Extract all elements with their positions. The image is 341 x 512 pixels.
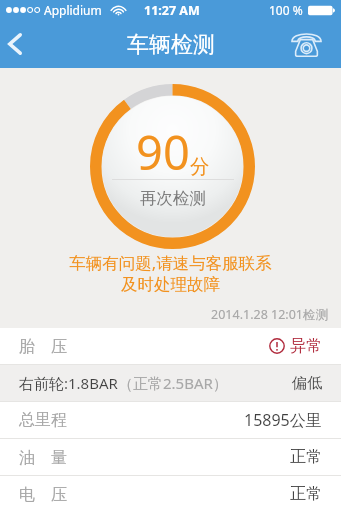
staticText: （正常2.5BAR） (118, 373, 228, 393)
button[interactable]: Call service (291, 20, 341, 68)
staticText: 90 (136, 120, 190, 184)
staticText: 右前轮:1.8BAR (19, 373, 118, 393)
staticText: 总里程 (19, 410, 67, 430)
button[interactable]: 胎 压 (0, 328, 341, 364)
staticText: 车辆检测 (127, 31, 215, 59)
button[interactable]: 总里程 (0, 402, 341, 438)
staticText: 车辆有问题,请速与客服联系 及时处理故障 (0, 251, 341, 295)
staticText: 正常 (290, 447, 322, 467)
button[interactable]: 右前轮:1.8BAR (0, 365, 341, 401)
button[interactable]: 油 量 (0, 439, 341, 475)
staticText: 分 (190, 154, 210, 179)
staticText: 胎 压 (19, 335, 67, 357)
button[interactable]: 电 压 (0, 476, 341, 512)
staticText: 11:27 AM (144, 2, 200, 19)
staticText: 偏低 (292, 374, 322, 393)
staticText: 电 压 (19, 483, 67, 505)
staticText: 15895公里 (244, 409, 322, 431)
staticText: 油 量 (19, 446, 67, 468)
button[interactable]: Back (0, 20, 40, 68)
staticText: 异常 (290, 336, 322, 356)
staticText: 再次检测 (140, 188, 206, 209)
staticText: 100 % (269, 2, 303, 18)
staticText: 正常 (290, 484, 322, 504)
staticText: Applidium (44, 2, 102, 18)
staticText: 2014.1.28 12:01检测 (0, 306, 328, 323)
